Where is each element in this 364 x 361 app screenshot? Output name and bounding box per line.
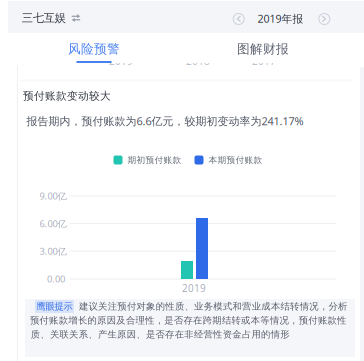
staticText: 风险预警 (68, 41, 120, 57)
staticText: 三七互娱 (22, 11, 66, 25)
staticText: 2019 (109, 54, 133, 68)
button[interactable]: 风险预警 (56, 34, 132, 64)
staticText: 3.00亿 (39, 245, 66, 257)
button[interactable]: 下一年 (318, 12, 331, 25)
staticText: 本期预付账款 (208, 154, 262, 165)
button[interactable]: 图解财报 (225, 34, 301, 64)
staticText: 2018 (186, 54, 210, 68)
staticText: 2017 (252, 54, 276, 68)
staticText: 2019 (182, 281, 206, 295)
staticText: 质、关联关系、产生原因、是否存在非经营性资金占用的情形 (31, 329, 289, 340)
staticText: 9.00亿 (39, 190, 66, 202)
staticText: 期初预付账款 (127, 154, 181, 165)
button[interactable]: 上一年 (232, 12, 245, 25)
button[interactable]: 三七互娱 (18, 6, 84, 30)
staticText: 建议关注预付对象的性质、业务模式和营业成本结转情况，分析 (79, 301, 347, 312)
staticText: 6.00亿 (39, 217, 66, 230)
staticText: 预付账款变动较大 (23, 89, 111, 103)
staticText: 鹰眼提示 (36, 301, 72, 312)
staticText: 预付账款增长的原因及合理性，是否存在跨期结转或本等情况，预付账款性 (30, 315, 346, 326)
staticText: 2019年报 (257, 11, 303, 26)
staticText: 报告期内，预付账款为6.6亿元，较期初变动率为241.17% (26, 114, 303, 128)
staticText: 0.00 (47, 273, 65, 285)
staticText: 图解财报 (237, 41, 289, 57)
